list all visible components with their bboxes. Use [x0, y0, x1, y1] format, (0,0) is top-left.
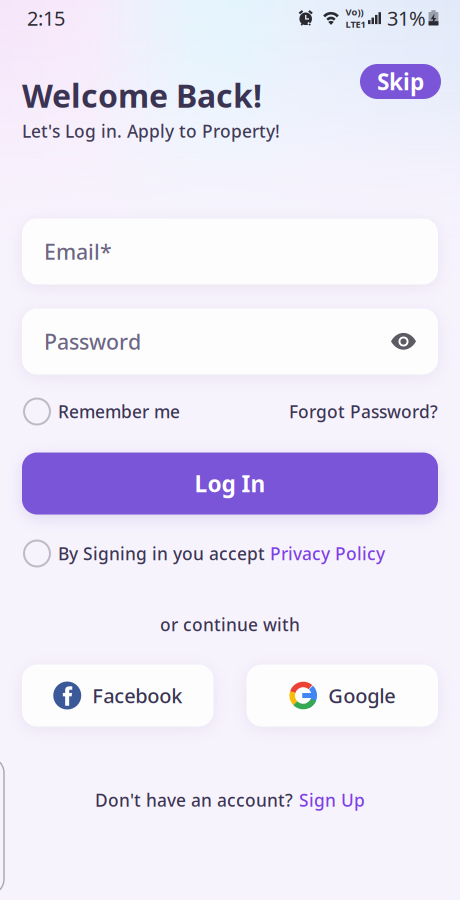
staticText: Forgot Password?: [289, 400, 438, 423]
button[interactable]: Remember me: [24, 398, 180, 424]
button[interactable]: Show password: [391, 332, 416, 350]
button[interactable]: Skip: [360, 64, 441, 99]
button[interactable]: Log In: [22, 452, 438, 514]
staticText: Don't have an account?: [95, 788, 293, 811]
staticText: Google: [328, 682, 395, 709]
button[interactable]: Privacy Policy: [270, 542, 385, 565]
button[interactable]: Sign Up: [299, 788, 365, 811]
staticText: Sign Up: [299, 788, 365, 811]
staticText: Privacy Policy: [270, 542, 385, 565]
staticText: LTE1: [345, 18, 365, 30]
staticText: By Signing in you accept: [58, 542, 265, 565]
button[interactable]: Accept privacy policy: [24, 540, 50, 566]
button[interactable]: Google: [246, 664, 438, 726]
staticText: Let's Log in. Apply to Property!: [22, 119, 280, 142]
staticText: or continue with: [160, 613, 300, 636]
staticText: Email*: [44, 237, 112, 266]
staticText: Welcome Back!: [22, 74, 262, 116]
button[interactable]: Forgot Password?: [289, 400, 438, 423]
staticText: Password: [44, 327, 141, 356]
staticText: Log In: [194, 468, 265, 499]
button[interactable]: Email*: [22, 218, 438, 284]
staticText: Facebook: [92, 682, 182, 709]
staticText: Skip: [377, 66, 424, 96]
staticText: 2:15: [27, 5, 65, 31]
staticText: 31%: [387, 5, 426, 31]
staticText: Vo)): [345, 6, 363, 18]
button[interactable]: Facebook: [22, 664, 213, 726]
staticText: Remember me: [58, 400, 180, 423]
